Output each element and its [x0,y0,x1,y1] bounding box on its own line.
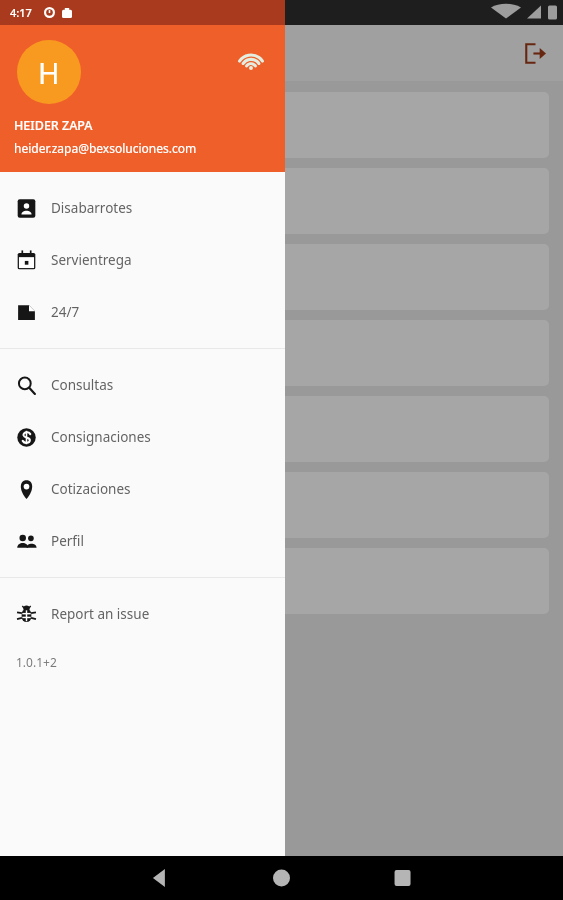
button[interactable] [14,472,549,538]
button[interactable] [14,548,549,614]
button[interactable]: Consignaciones [0,411,285,463]
button[interactable]: 24/7 [0,286,285,338]
button[interactable]: Disabarrotes [0,182,285,234]
staticText: 4:17 [10,5,32,20]
button[interactable]: Servientrega [0,234,285,286]
staticText: Disabarrotes [51,199,133,217]
staticText: Report an issue [51,605,150,623]
button[interactable]: Perfil [0,515,285,567]
staticText: Perfil [51,532,84,550]
staticText: Servientrega [51,251,132,269]
button[interactable] [14,244,549,310]
button[interactable] [14,168,549,234]
button[interactable]: Consultas [0,359,285,411]
staticText: Redes y Parks [70,42,176,64]
staticText: 24/7 [51,303,80,321]
button[interactable]: Cotizaciones [0,463,285,515]
button[interactable] [14,320,549,386]
button[interactable]: Report an issue [0,588,285,640]
staticText: H [38,53,60,92]
staticText: 1.0.1+2 [16,654,57,670]
staticText: HEIDER ZAPA [14,117,93,134]
button[interactable]: Logout [513,31,557,75]
staticText: Cotizaciones [51,480,131,498]
button[interactable] [14,92,549,158]
button[interactable] [14,396,549,462]
other: Wifi connected [233,41,269,77]
staticText: heider.zapa@bexsoluciones.com [14,140,197,156]
staticText: Consignaciones [51,428,151,446]
staticText: Consultas [51,376,114,394]
